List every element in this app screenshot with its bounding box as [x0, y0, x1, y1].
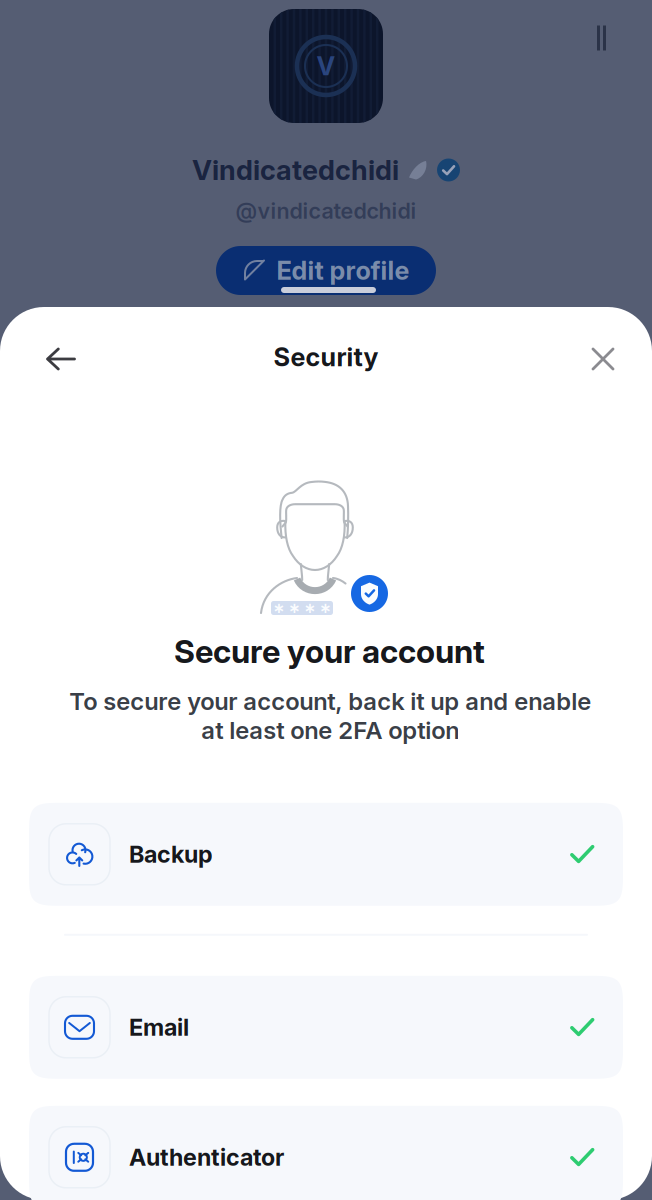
button[interactable]: Close: [579, 335, 627, 383]
staticText: @vindicatedchidi: [235, 198, 416, 224]
staticText: To secure your account, back it up and e…: [69, 687, 591, 745]
staticText: Authenticator: [129, 1143, 284, 1171]
staticText: Email: [129, 1013, 189, 1041]
button[interactable]: Back: [37, 335, 85, 383]
staticText: Secure your account: [174, 632, 485, 671]
staticText: Edit profile: [276, 255, 409, 286]
button[interactable]: Authenticator: [29, 1106, 623, 1200]
staticText: Security: [273, 342, 378, 372]
button[interactable]: Backup: [29, 803, 623, 906]
button[interactable]: Email: [29, 976, 623, 1079]
staticText: ∗∗∗∗: [273, 599, 331, 617]
staticText: Backup: [129, 840, 213, 868]
staticText: Vindicatedchidi: [192, 153, 399, 187]
staticText: V: [316, 51, 335, 81]
